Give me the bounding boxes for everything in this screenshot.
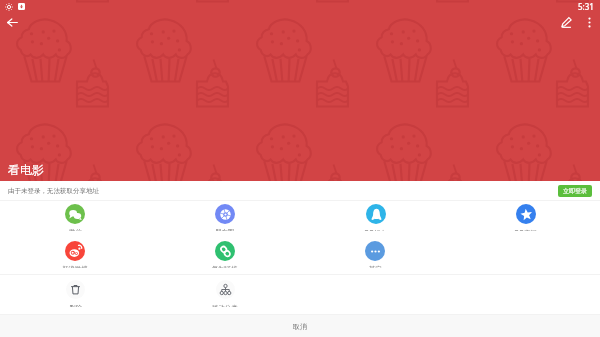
button[interactable]: More options [578, 11, 600, 33]
button[interactable]: 移动分类 [197, 280, 253, 307]
button[interactable]: 新浪微博 [47, 241, 103, 268]
button[interactable]: Back [3, 13, 21, 31]
staticText: 5:31 [578, 1, 594, 12]
staticText: 朋友圈 [215, 228, 235, 231]
staticText: 微信 [69, 228, 82, 231]
button[interactable]: 删除 [47, 280, 103, 307]
button[interactable]: 取消 [0, 315, 600, 337]
staticText: QQ好友 [364, 228, 387, 231]
button[interactable]: Edit [554, 11, 578, 33]
staticText: 复制链接 [212, 265, 238, 268]
button[interactable]: 复制链接 [197, 241, 253, 268]
button[interactable]: 朋友圈 [197, 204, 253, 231]
staticText: 其它 [369, 265, 382, 268]
button[interactable]: QQ空间 [497, 204, 553, 231]
button[interactable]: QQ好友 [347, 204, 403, 231]
button[interactable]: 其它 [347, 241, 403, 268]
staticText: 立即登录 [563, 187, 587, 195]
button[interactable]: 微信 [47, 204, 103, 231]
staticText: 看电影 [8, 162, 44, 177]
staticText: 新浪微博 [62, 265, 88, 268]
staticText: 删除 [69, 304, 82, 307]
button[interactable]: 立即登录 [558, 185, 592, 197]
staticText: QQ空间 [514, 228, 537, 231]
staticText: 由于未登录，无法获取分享地址 [8, 187, 99, 195]
staticText: 取消 [293, 322, 307, 331]
staticText: 移动分类 [212, 304, 238, 307]
